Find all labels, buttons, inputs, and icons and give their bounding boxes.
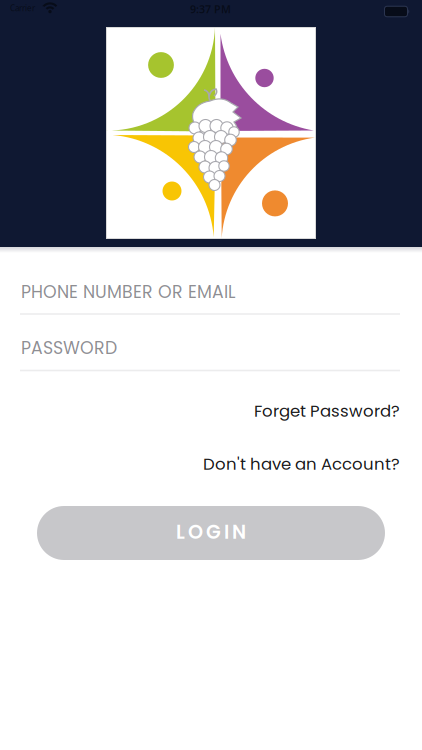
button[interactable]: LOGIN: [37, 506, 385, 560]
button[interactable]: Don't have an Account?: [203, 452, 400, 475]
staticText: Forget Password?: [254, 399, 400, 422]
staticText: 9:37 PM: [190, 2, 231, 16]
staticText: Carrier: [10, 3, 35, 13]
button[interactable]: Forget Password?: [254, 399, 400, 422]
staticText: PHONE NUMBER OR EMAIL: [21, 280, 235, 304]
staticText: PASSWORD: [21, 336, 117, 360]
staticText: LOGIN: [176, 519, 246, 545]
staticText: Don't have an Account?: [203, 452, 400, 475]
